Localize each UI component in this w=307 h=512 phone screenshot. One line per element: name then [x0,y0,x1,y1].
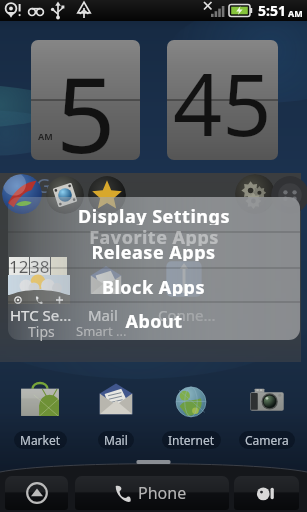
staticText: 5:51 [258,1,286,20]
staticText: Conne... [158,305,216,325]
button[interactable]: Settings [235,174,275,214]
staticText: Mail [104,432,128,448]
button[interactable]: Release Apps [0,240,307,261]
staticText: Release Apps [91,240,216,261]
staticText: 5 [56,42,116,160]
button[interactable]: Clock [167,40,278,160]
staticText: Tips [28,322,55,341]
staticText: Mail [88,305,118,325]
staticText: 12 [9,255,29,278]
staticText: Goo [36,172,75,199]
staticText: AM [38,130,53,142]
button[interactable]: Camera [231,378,303,449]
button[interactable]: Favorites [88,176,126,214]
staticText: AM [288,7,303,19]
staticText: Block Apps [102,275,205,296]
staticText: 38 [30,255,50,278]
button[interactable]: Browser [2,174,42,214]
button[interactable]: Favorite Apps [0,225,307,246]
staticText: Market [20,432,61,448]
button[interactable]: Market [4,378,76,449]
button[interactable]: More apps [271,176,307,214]
staticText: Internet [168,432,215,448]
button[interactable]: About [0,309,307,330]
staticText: Camera [245,432,289,448]
staticText: 45 [173,44,272,160]
button[interactable]: Mail [80,378,152,449]
staticText: Favorite Apps [89,225,219,246]
staticText: Display Settings [78,204,230,225]
button[interactable]: Phone [75,476,229,510]
button[interactable]: Display Settings [0,204,307,225]
staticText: Smart ... [76,322,127,340]
button[interactable]: Clock [31,40,140,160]
staticText: HTC Se... [10,305,72,325]
button[interactable]: Internet [155,378,227,449]
button[interactable]: Gallery [46,176,84,214]
button[interactable]: Block Apps [0,275,307,296]
button[interactable]: Personalize [234,476,299,510]
staticText: Phone [138,482,187,504]
staticText: About [125,309,183,330]
button[interactable]: Open app drawer [5,476,68,510]
